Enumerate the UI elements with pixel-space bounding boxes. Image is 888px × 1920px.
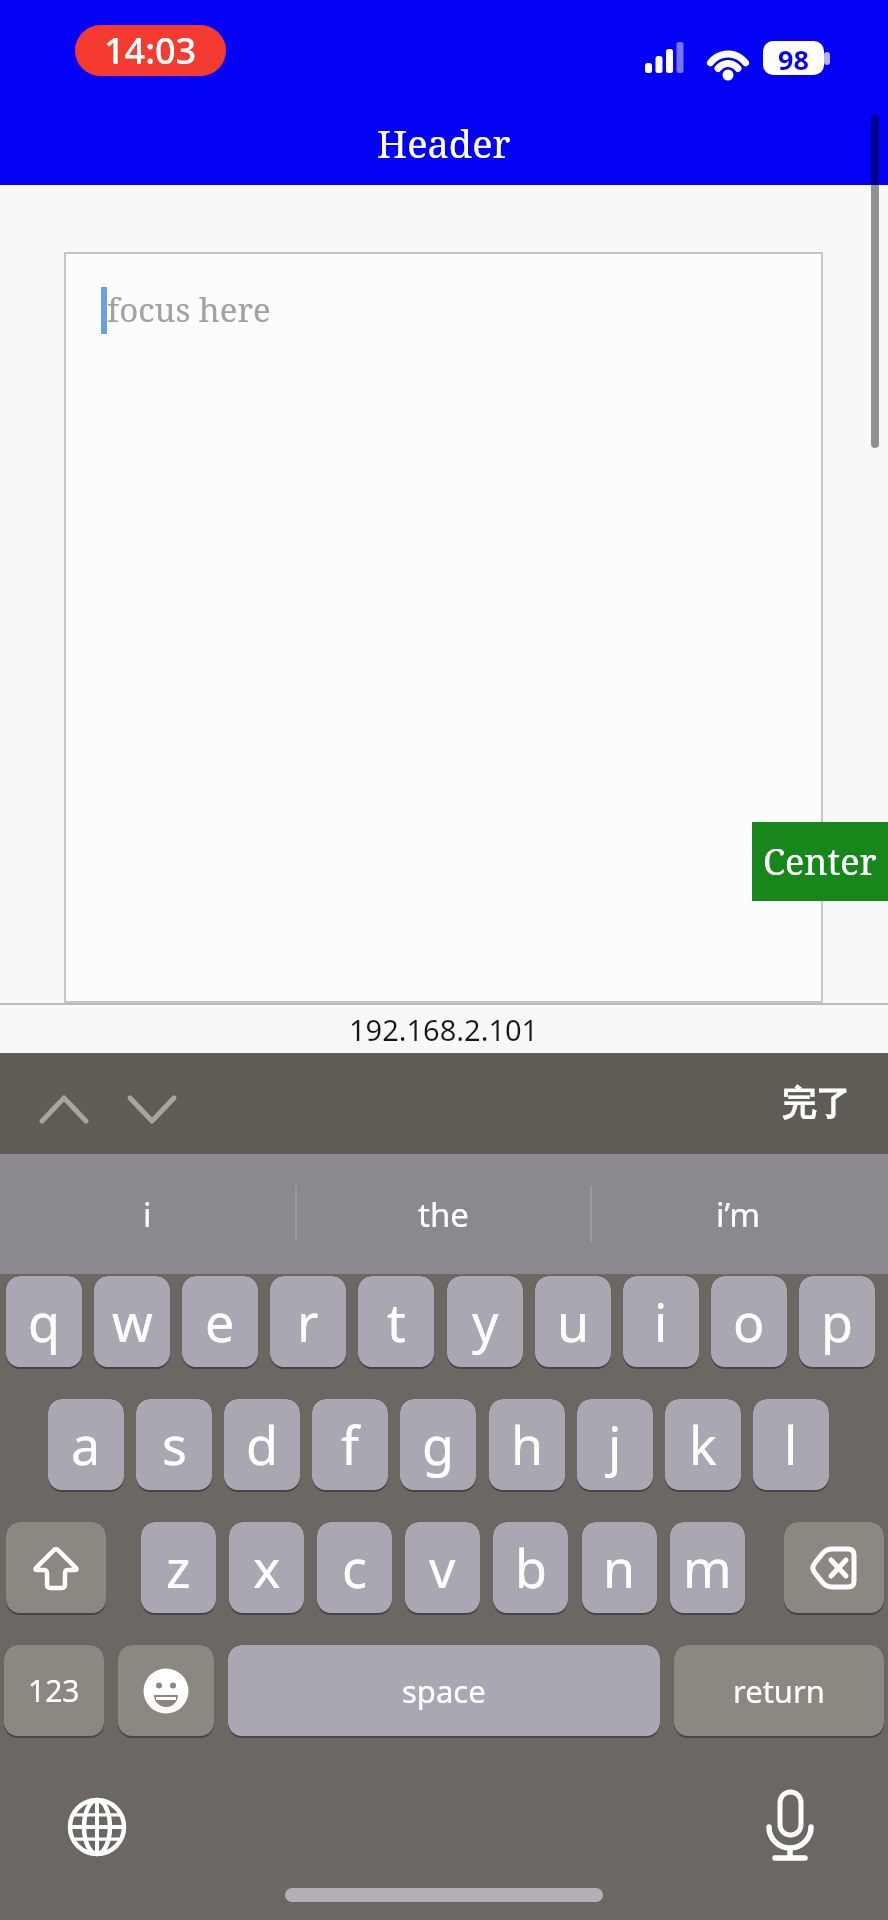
staticText: f	[341, 1409, 359, 1480]
button[interactable]: f	[312, 1399, 388, 1492]
button[interactable]: 14:03	[75, 25, 226, 76]
staticText: w	[112, 1286, 153, 1357]
button[interactable]: the	[296, 1154, 591, 1274]
button[interactable]: space	[228, 1645, 660, 1738]
button[interactable]: d	[224, 1399, 300, 1492]
staticText: Header	[377, 117, 511, 169]
staticText: x	[253, 1532, 281, 1603]
staticText: 98	[778, 41, 809, 75]
button[interactable]: e	[182, 1276, 258, 1369]
staticText: m	[683, 1532, 732, 1603]
button[interactable]: u	[535, 1276, 611, 1369]
staticText: Center	[763, 837, 877, 886]
staticText: 192.168.2.101	[349, 1010, 539, 1049]
button[interactable]: i	[623, 1276, 699, 1369]
button[interactable]: b	[493, 1522, 568, 1615]
staticText: h	[511, 1409, 544, 1480]
button[interactable]: l	[753, 1399, 829, 1492]
staticText: a	[71, 1409, 101, 1480]
staticText: d	[246, 1409, 278, 1480]
button[interactable]: j	[577, 1399, 653, 1492]
staticText: focus here	[107, 287, 271, 332]
staticText: o	[733, 1286, 765, 1357]
button[interactable]	[784, 1522, 884, 1615]
staticText: g	[422, 1409, 454, 1480]
staticText: return	[733, 1670, 825, 1712]
staticText: r	[297, 1286, 319, 1357]
button[interactable]: o	[711, 1276, 787, 1369]
staticText: p	[821, 1286, 853, 1357]
button[interactable]: g	[400, 1399, 476, 1492]
staticText: 14:03	[104, 26, 197, 75]
staticText: 完了	[782, 1082, 850, 1125]
staticText: e	[205, 1286, 235, 1357]
button[interactable]: i	[0, 1154, 295, 1274]
staticText: c	[342, 1532, 367, 1603]
button[interactable]: 完了	[782, 1082, 850, 1125]
button[interactable]	[118, 1645, 214, 1738]
button[interactable]: return	[674, 1645, 884, 1738]
staticText: i	[654, 1286, 668, 1357]
staticText: j	[608, 1409, 622, 1480]
staticText: s	[162, 1409, 187, 1480]
staticText: t	[387, 1286, 406, 1357]
button[interactable]: i’m	[591, 1154, 886, 1274]
button[interactable]: x	[229, 1522, 304, 1615]
button[interactable]: 123	[4, 1645, 104, 1738]
button[interactable]	[6, 1522, 106, 1615]
button[interactable]: w	[94, 1276, 170, 1369]
button[interactable]: a	[48, 1399, 124, 1492]
button[interactable]: p	[799, 1276, 875, 1369]
button[interactable]: r	[270, 1276, 346, 1369]
button[interactable]: k	[665, 1399, 741, 1492]
staticText: n	[603, 1532, 636, 1603]
button[interactable]: y	[447, 1276, 523, 1369]
button[interactable]: q	[6, 1276, 82, 1369]
staticText: space	[402, 1670, 486, 1712]
staticText: b	[515, 1532, 547, 1603]
staticText: 123	[28, 1670, 80, 1711]
button[interactable]: n	[582, 1522, 657, 1615]
button[interactable]: Center	[752, 822, 888, 901]
staticText: l	[784, 1409, 798, 1480]
button[interactable]: focus here	[64, 252, 823, 1003]
staticText: k	[689, 1409, 717, 1480]
staticText: the	[418, 1192, 469, 1237]
button[interactable]: t	[358, 1276, 434, 1369]
button[interactable]: v	[405, 1522, 480, 1615]
staticText: u	[557, 1286, 590, 1357]
staticText: v	[429, 1532, 456, 1603]
button[interactable]: m	[670, 1522, 745, 1615]
button[interactable]: c	[317, 1522, 392, 1615]
staticText: i’m	[716, 1192, 761, 1237]
staticText: z	[166, 1532, 191, 1603]
staticText: i	[143, 1192, 152, 1237]
button[interactable]: h	[489, 1399, 565, 1492]
button[interactable]: s	[136, 1399, 212, 1492]
staticText: y	[472, 1286, 499, 1357]
button[interactable]: z	[141, 1522, 216, 1615]
staticText: q	[28, 1286, 60, 1357]
